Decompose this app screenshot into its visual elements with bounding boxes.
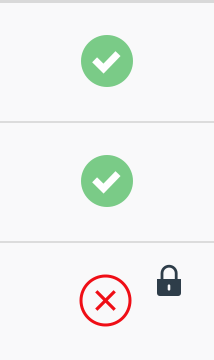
button[interactable]: Step passed (0, 123, 214, 241)
button[interactable]: Step failed, locked (0, 243, 214, 360)
button[interactable]: Step passed (0, 3, 214, 121)
